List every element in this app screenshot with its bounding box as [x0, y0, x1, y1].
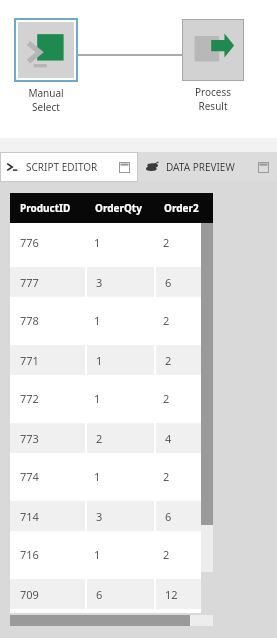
- staticText: 2: [163, 547, 170, 562]
- staticText: 716: [20, 547, 39, 562]
- button[interactable]: Manual Select script node: [14, 18, 78, 114]
- other: Manual Select script node: [18, 22, 74, 78]
- staticText: 12: [165, 587, 178, 602]
- staticText: 771: [20, 353, 39, 368]
- button[interactable]: 714: [10, 496, 201, 535]
- button[interactable]: SCRIPT EDITOR: [0, 152, 138, 182]
- button[interactable]: 773: [10, 418, 201, 457]
- staticText: 774: [20, 469, 39, 484]
- staticText: 2: [163, 235, 170, 250]
- staticText: 4: [165, 431, 172, 446]
- staticText: 6: [165, 275, 172, 290]
- button[interactable]: Maximize panel: [119, 162, 130, 173]
- button[interactable]: 716: [10, 535, 201, 574]
- staticText: 778: [20, 313, 39, 328]
- staticText: OrderQty: [95, 201, 142, 215]
- button[interactable]: 776: [10, 223, 201, 262]
- staticText: Process Result: [182, 85, 244, 113]
- staticText: 709: [20, 587, 39, 602]
- staticText: 3: [96, 275, 103, 290]
- staticText: ProductID: [20, 201, 71, 215]
- staticText: 2: [163, 313, 170, 328]
- other: Process Result node: [183, 20, 243, 80]
- staticText: 777: [20, 275, 39, 290]
- staticText: 6: [96, 587, 103, 602]
- staticText: 3: [96, 509, 103, 524]
- button[interactable]: 771: [10, 340, 201, 379]
- staticText: 1: [94, 313, 101, 328]
- staticText: 1: [96, 353, 103, 368]
- button[interactable]: 772: [10, 379, 201, 418]
- button[interactable]: Maximize panel: [258, 162, 269, 173]
- staticText: 776: [20, 235, 39, 250]
- button[interactable]: Process Result node: [182, 19, 244, 113]
- staticText: 1: [94, 235, 101, 250]
- staticText: 1: [94, 547, 101, 562]
- staticText: 773: [20, 431, 39, 446]
- staticText: 1: [94, 469, 101, 484]
- button[interactable]: DATA PREVIEW: [138, 152, 277, 182]
- staticText: 772: [20, 391, 39, 406]
- staticText: 2: [163, 391, 170, 406]
- staticText: Manual Select: [14, 86, 78, 114]
- staticText: 6: [165, 509, 172, 524]
- staticText: SCRIPT EDITOR: [26, 160, 98, 174]
- button[interactable]: 709: [10, 574, 201, 613]
- button[interactable]: 774: [10, 457, 201, 496]
- staticText: Order2: [164, 201, 199, 215]
- staticText: 2: [165, 353, 172, 368]
- staticText: 714: [20, 509, 39, 524]
- button[interactable]: 778: [10, 301, 201, 340]
- staticText: 2: [163, 469, 170, 484]
- button[interactable]: 777: [10, 262, 201, 301]
- staticText: 1: [94, 391, 101, 406]
- staticText: DATA PREVIEW: [166, 160, 235, 174]
- staticText: 2: [96, 431, 103, 446]
